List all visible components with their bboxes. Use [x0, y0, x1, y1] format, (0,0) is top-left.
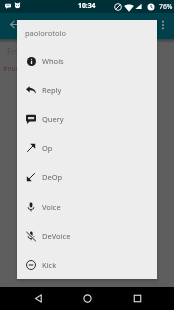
button[interactable]: Home: [75, 287, 99, 310]
staticText: Voice: [42, 202, 61, 212]
button[interactable]: Reply: [17, 75, 157, 104]
staticText: 76%: [159, 2, 173, 11]
button[interactable]: DeOp: [17, 162, 157, 191]
staticText: Kick: [42, 260, 57, 270]
button[interactable]: Recents: [125, 287, 149, 310]
staticText: #num: [3, 64, 23, 73]
staticText: paolorotolo: [25, 28, 67, 38]
button[interactable]: Kick: [17, 250, 157, 279]
button[interactable]: Query: [17, 104, 157, 133]
button[interactable]: Voice: [17, 192, 157, 221]
staticText: Op: [42, 143, 53, 153]
button[interactable]: Back: [26, 287, 50, 310]
staticText: Fren: [7, 46, 25, 58]
staticText: DeOp: [42, 172, 63, 182]
staticText: DeVoice: [42, 231, 71, 241]
button[interactable]: More options: [155, 17, 171, 33]
button[interactable]: DeVoice: [17, 221, 157, 250]
button[interactable]: Whois: [17, 46, 157, 75]
button[interactable]: Op: [17, 133, 157, 162]
button[interactable]: Back: [6, 15, 25, 34]
staticText: Query: [42, 114, 64, 124]
staticText: Reply: [42, 85, 62, 95]
staticText: Whois: [42, 56, 64, 66]
staticText: 10:34: [78, 1, 96, 10]
